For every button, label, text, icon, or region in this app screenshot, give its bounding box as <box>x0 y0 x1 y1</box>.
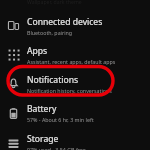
staticText: Wallpaper, dark theme <box>27 0 82 5</box>
button[interactable]: Notifications <box>0 69 150 98</box>
other: Storage <box>0 138 27 149</box>
other: Notifications <box>0 78 27 89</box>
button[interactable]: Connected devices <box>0 11 150 40</box>
other: Battery <box>0 108 27 119</box>
staticText: Storage <box>27 133 59 145</box>
staticText: Notification history, conversations <box>27 87 112 94</box>
staticText: Bluetooth, pairing <box>27 29 73 36</box>
other: Connected devices <box>0 20 27 31</box>
staticText: Assistant, recent apps, default apps <box>27 58 116 65</box>
staticText: Connected devices <box>27 16 103 28</box>
button[interactable]: Apps <box>0 40 150 69</box>
staticText: Notifications <box>27 74 79 86</box>
other: Apps <box>0 49 27 60</box>
button[interactable]: Battery <box>0 98 150 128</box>
staticText: 97% used - 3.54 GB free <box>27 146 86 150</box>
staticText: 57% - About 6 hr, 3 min left <box>27 116 94 123</box>
staticText: Battery <box>27 103 57 115</box>
button[interactable]: Storage <box>0 128 150 150</box>
staticText: Apps <box>27 45 48 57</box>
